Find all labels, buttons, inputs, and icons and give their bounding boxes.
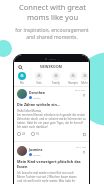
staticText: Family bbox=[52, 81, 60, 85]
staticText: Rezepte bbox=[68, 81, 78, 85]
staticText: Die Zähne wirbeln ein... bbox=[17, 102, 60, 107]
staticText: NEWSROOM bbox=[40, 64, 63, 69]
staticText: Ich brauche mal wieder einen Rat von euc… bbox=[17, 171, 77, 183]
button[interactable]: Family bbox=[47, 71, 64, 85]
staticText: Hallo liebe Mamas, bei meinem Kleinen sc… bbox=[17, 109, 86, 129]
button[interactable]: Me bbox=[14, 71, 30, 85]
staticText: Mehr bbox=[81, 81, 88, 85]
staticText: Mama bbox=[33, 153, 41, 156]
button[interactable]: 24 bbox=[17, 132, 25, 136]
staticText: Dorothea bbox=[29, 90, 45, 95]
button[interactable]: Dorothea bbox=[14, 87, 89, 137]
staticText: 24 bbox=[22, 132, 25, 136]
staticText: Kids bbox=[36, 81, 42, 85]
staticText: Connect with great moms like you bbox=[19, 2, 86, 22]
staticText: vor 4 Std. bbox=[75, 89, 86, 92]
button[interactable]: Mehr bbox=[81, 71, 88, 85]
staticText: Me bbox=[20, 81, 24, 85]
button[interactable]: Rezepte bbox=[64, 71, 81, 85]
staticText: Mein Kind verweigert plötzlich das Essen bbox=[17, 159, 86, 169]
button[interactable]: 16 bbox=[31, 132, 39, 136]
staticText: vor 1 Tag bbox=[76, 146, 86, 149]
staticText: Jasmine bbox=[29, 147, 43, 152]
button[interactable]: Share bbox=[82, 94, 86, 98]
button[interactable]: Share bbox=[82, 151, 86, 155]
staticText: for inspiration, encouragement and share… bbox=[15, 27, 89, 41]
button[interactable]: Save bbox=[82, 132, 86, 136]
button[interactable]: Search bbox=[17, 64, 23, 70]
staticText: 16 bbox=[36, 132, 39, 136]
button[interactable]: Kids bbox=[30, 71, 47, 85]
staticText: Mama bbox=[33, 96, 41, 99]
button[interactable]: Jasmine bbox=[14, 144, 89, 184]
